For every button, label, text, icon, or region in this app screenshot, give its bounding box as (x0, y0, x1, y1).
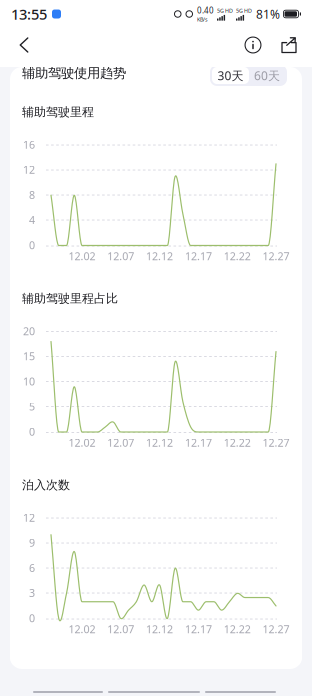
staticText: 12 (23, 510, 35, 525)
staticText: 0 (29, 238, 35, 252)
staticText: 辅助驾驶里程 (22, 105, 94, 119)
staticText: 12.27 (262, 622, 289, 636)
staticText: 9 (29, 535, 35, 550)
staticText: 15 (23, 349, 35, 363)
staticText: 81% (256, 6, 280, 22)
staticText: 12.17 (185, 435, 212, 450)
staticText: 12.02 (68, 622, 95, 636)
staticText: 辅助驾驶里程占比 (22, 291, 118, 306)
staticText: 12.07 (107, 435, 134, 450)
staticText: 12.07 (107, 249, 134, 263)
button[interactable]: 30天 (212, 67, 249, 84)
staticText: 12 (23, 162, 35, 177)
staticText: 0.40 (197, 5, 214, 16)
staticText: 12.17 (185, 249, 212, 263)
staticText: 12.07 (107, 622, 134, 636)
button[interactable]: Info (237, 28, 269, 62)
staticText: 12.02 (68, 435, 95, 450)
button[interactable]: 60天 (249, 67, 285, 84)
staticText: 辅助驾驶使用趋势 (22, 65, 126, 81)
staticText: 12.12 (146, 622, 173, 636)
staticText: 12.22 (224, 622, 251, 636)
staticText: 0 (29, 424, 35, 439)
staticText: KB/s (197, 16, 208, 23)
staticText: 10 (23, 374, 35, 388)
button[interactable]: Back (7, 28, 41, 62)
staticText: 4 (29, 213, 35, 227)
staticText: 13:55 (11, 4, 47, 24)
staticText: 泊入次数 (22, 478, 70, 492)
staticText: 20 (23, 324, 35, 338)
staticText: 12.02 (68, 249, 95, 263)
staticText: 8 (29, 188, 35, 202)
staticText: 5G HD (236, 7, 252, 14)
staticText: 60天 (254, 67, 280, 83)
staticText: 5G HD (217, 7, 233, 14)
staticText: 3 (29, 586, 35, 600)
staticText: 0 (29, 611, 35, 625)
staticText: 12.12 (146, 435, 173, 450)
staticText: 5 (29, 399, 35, 413)
staticText: 12.27 (262, 435, 289, 450)
button[interactable]: Share (273, 28, 305, 62)
staticText: 6 (29, 561, 35, 575)
staticText: 16 (23, 137, 35, 152)
staticText: 12.27 (262, 249, 289, 263)
staticText: 12.22 (224, 249, 251, 263)
staticText: 30天 (217, 67, 243, 83)
staticText: 12.12 (146, 249, 173, 263)
staticText: 12.22 (224, 435, 251, 450)
staticText: 12.17 (185, 622, 212, 636)
